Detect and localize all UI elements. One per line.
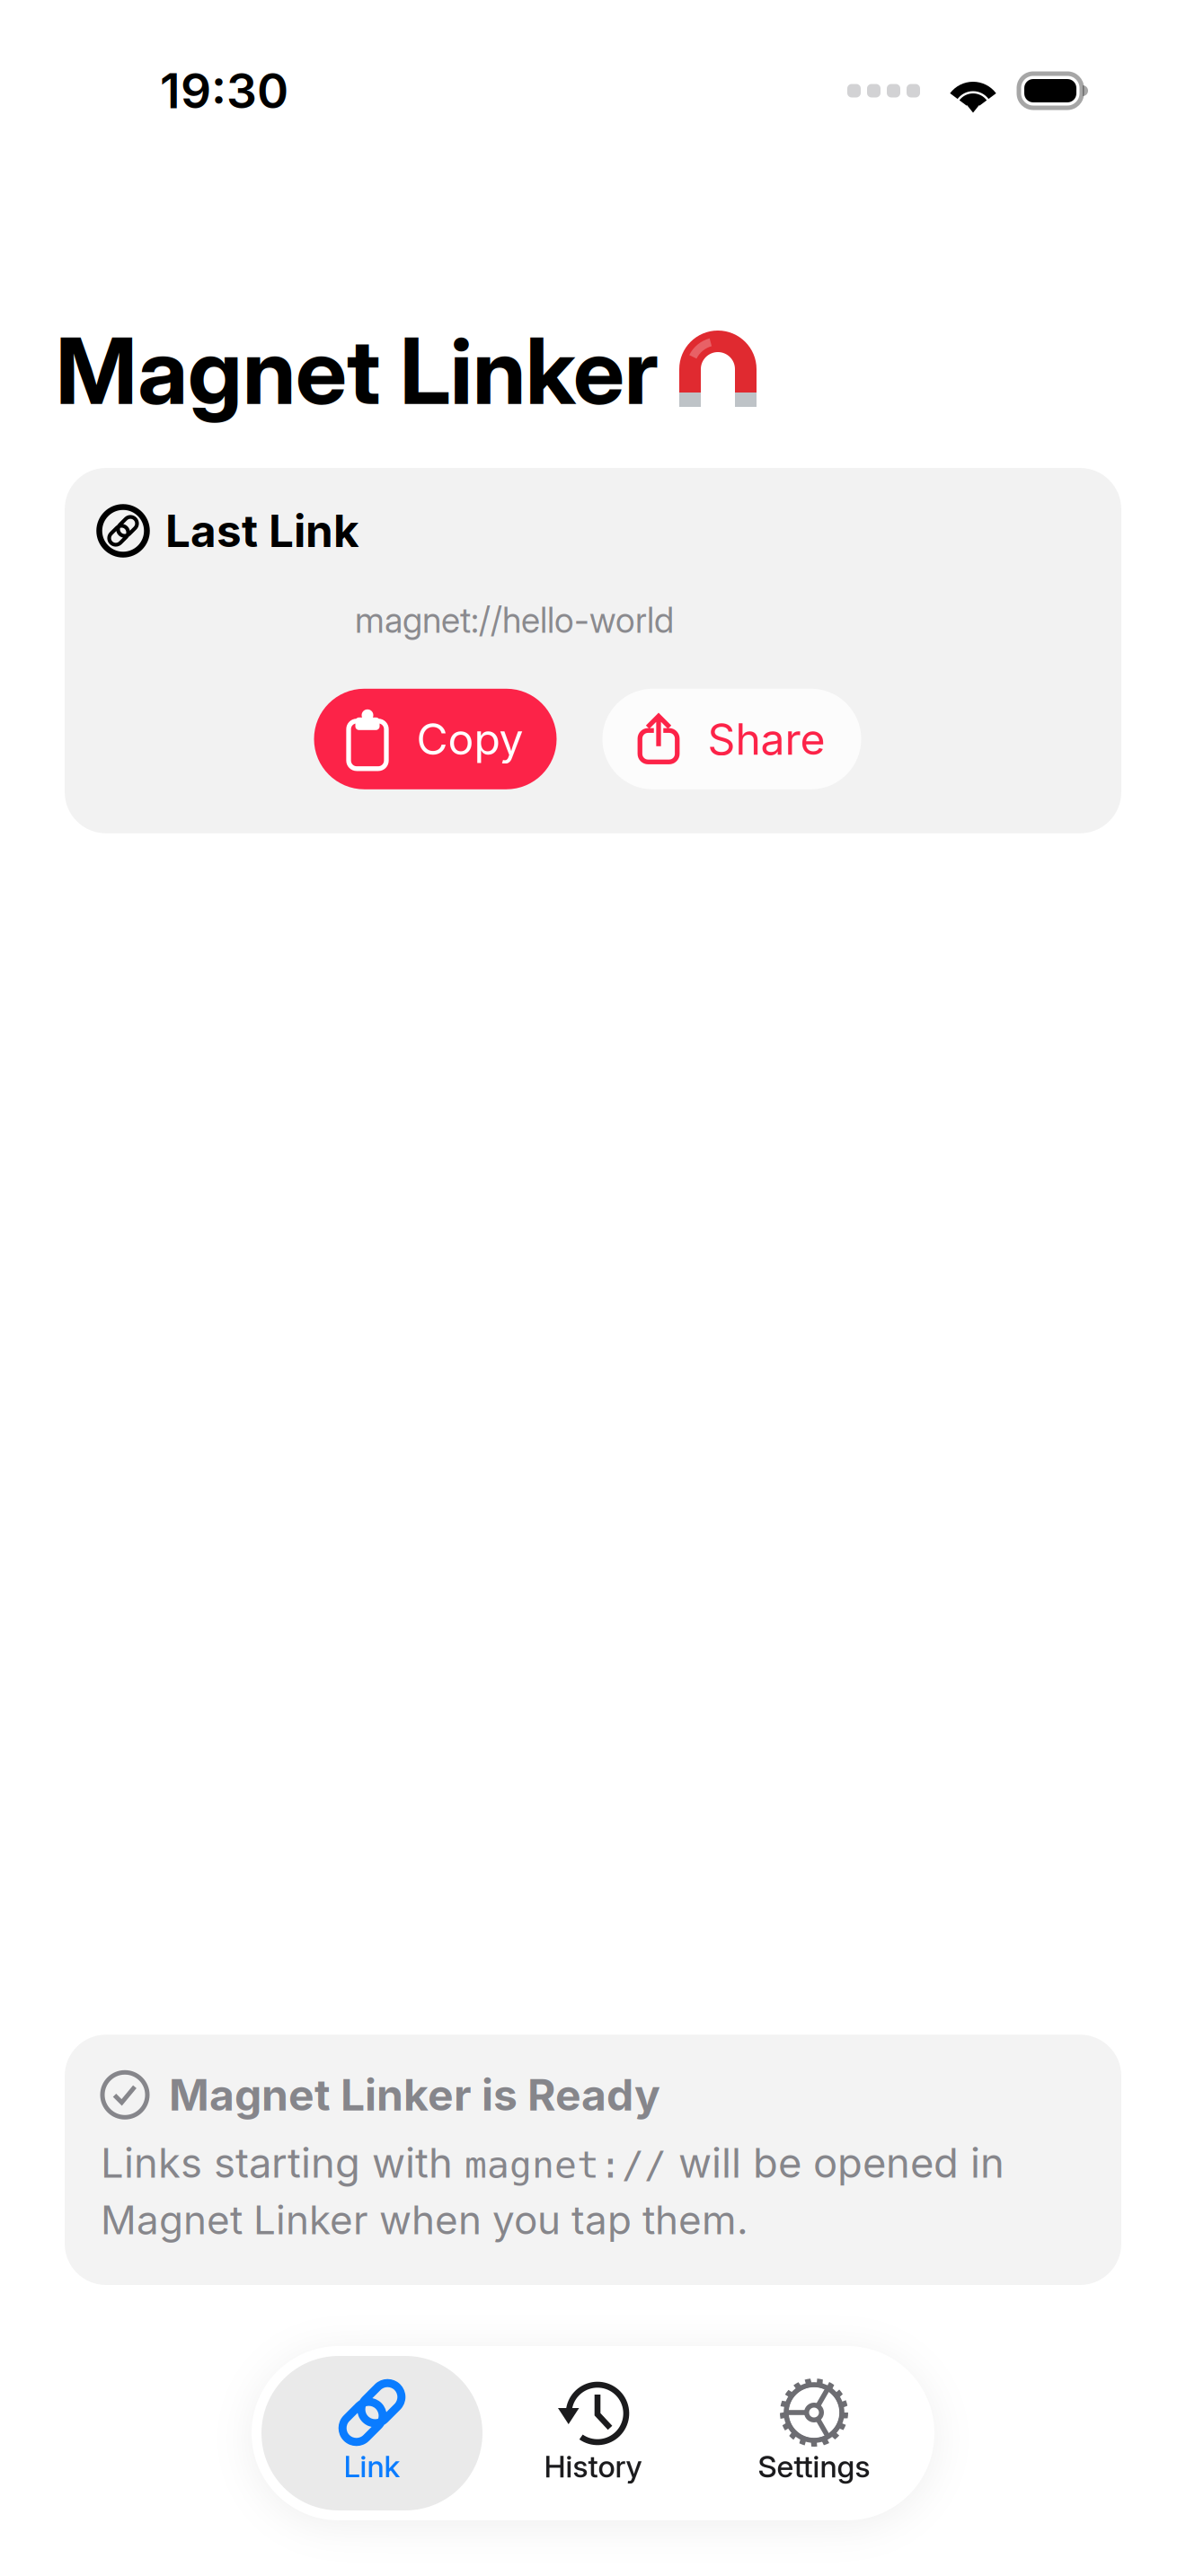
staticText: Copy [416,713,523,765]
button[interactable]: Settings [704,2356,925,2510]
staticText: Last Link [165,504,359,558]
staticText: Settings [758,2448,870,2484]
staticText: 19:30 [160,62,288,120]
button[interactable]: Share [602,689,861,789]
staticText: History [544,2448,642,2484]
staticText: Magnet Linker [56,316,659,426]
button[interactable]: Link [261,2356,482,2510]
staticText: Magnet Linker when you tap them. [101,2196,748,2244]
staticText: Share [708,713,825,765]
staticText: Links starting with magnet:// will be op… [101,2139,1005,2187]
button[interactable]: Copy [314,689,557,789]
button[interactable]: History [482,2356,704,2510]
staticText: Magnet Linker is Ready [169,2069,660,2121]
staticText: magnet://hello-world [355,599,674,641]
staticText: Link [344,2448,400,2484]
